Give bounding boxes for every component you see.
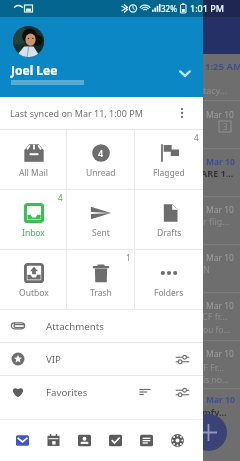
staticText: Joel Lee	[11, 62, 58, 78]
staticText: Mar 10	[206, 156, 235, 168]
staticText: F Fr...	[203, 361, 225, 373]
button[interactable]: Filter	[175, 385, 190, 400]
staticText: All Mail	[19, 167, 48, 179]
button[interactable]: Drafts	[135, 190, 203, 249]
button[interactable]: Compose	[190, 414, 227, 451]
button[interactable]: Calendar	[38, 420, 69, 461]
button[interactable]: Inbox	[0, 190, 67, 249]
button[interactable]: VIP	[0, 343, 203, 375]
button[interactable]: Contacts	[69, 420, 100, 461]
button[interactable]: Notes	[131, 420, 162, 461]
button[interactable]: Last synced on Mar 11, 1:00 PM	[0, 97, 203, 129]
staticText: 1	[126, 252, 131, 263]
staticText: Mar 10	[206, 394, 235, 406]
button[interactable]: Sent	[67, 190, 135, 249]
staticText: 4	[58, 192, 63, 203]
button[interactable]: Tasks	[100, 420, 131, 461]
button[interactable]: Switch account	[175, 63, 195, 83]
staticText: Sent	[92, 227, 110, 239]
button[interactable]: Mail	[6, 420, 38, 461]
staticText: r flig...	[203, 215, 230, 227]
button[interactable]: Profile photo	[13, 26, 44, 57]
staticText: ou fo...	[203, 324, 231, 336]
staticText: Outbox	[19, 287, 49, 299]
staticText: Inbox	[22, 227, 45, 239]
staticText: Favorites	[46, 386, 88, 399]
staticText: VIP	[46, 353, 61, 366]
staticText: 1:01 PM	[190, 2, 224, 14]
staticText: tacy...	[203, 84, 228, 96]
button[interactable]: Folders	[135, 250, 203, 309]
button[interactable]: 4	[67, 130, 135, 189]
staticText: 3	[223, 121, 228, 132]
staticText: Folders	[154, 287, 184, 299]
staticText: Drafts	[157, 227, 182, 239]
button[interactable]: Settings	[162, 420, 193, 461]
staticText: is no...	[203, 374, 229, 386]
staticText: 1:25 AM	[205, 60, 240, 73]
staticText: 4	[194, 132, 199, 143]
staticText: Flagged	[153, 167, 185, 179]
button[interactable]: Favorites	[0, 376, 203, 408]
staticText: Trash	[90, 287, 112, 299]
staticText: ARE 1...	[201, 167, 234, 179]
button[interactable]: Attachments	[0, 310, 203, 342]
button[interactable]: Trash	[67, 250, 135, 309]
staticText: CF fr...	[202, 310, 228, 322]
staticText: 4	[98, 147, 104, 159]
staticText: 32%	[161, 3, 177, 14]
button[interactable]: All Mail	[0, 130, 67, 189]
staticText: Mar 10	[206, 204, 234, 216]
staticText: Mar 10	[206, 109, 234, 121]
staticText: Last synced on Mar 11, 1:00 PM	[10, 107, 143, 119]
button[interactable]: Flagged	[135, 130, 203, 189]
staticText: Mar 10	[206, 348, 234, 360]
button[interactable]: Filter	[175, 352, 190, 367]
staticText: Attachments	[46, 320, 104, 333]
staticText: N	[203, 263, 210, 275]
button[interactable]: More options	[175, 106, 189, 120]
button[interactable]: Outbox	[0, 250, 67, 309]
staticText: Unread	[86, 167, 116, 179]
button[interactable]: Sort	[138, 385, 152, 399]
staticText: Mar 10	[206, 252, 234, 264]
staticText: mfy...	[202, 406, 227, 418]
staticText: Mar 10	[206, 300, 234, 312]
